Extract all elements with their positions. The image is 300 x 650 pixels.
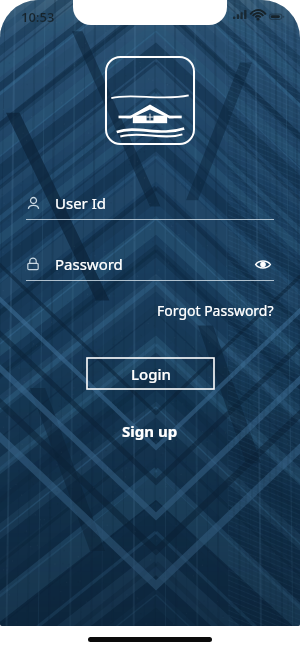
button[interactable]: Sign up: [108, 415, 192, 447]
staticText: Password: [55, 254, 123, 274]
staticText: Login: [131, 364, 171, 384]
button[interactable]: User Id: [26, 187, 274, 219]
staticText: Sign up: [122, 421, 178, 441]
button[interactable]: Show password: [252, 253, 274, 275]
button[interactable]: Password: [26, 248, 274, 280]
staticText: User Id: [55, 193, 107, 213]
button[interactable]: Login: [87, 358, 214, 389]
staticText: 10:53: [21, 8, 55, 26]
button[interactable]: Forgot Password?: [157, 295, 274, 326]
